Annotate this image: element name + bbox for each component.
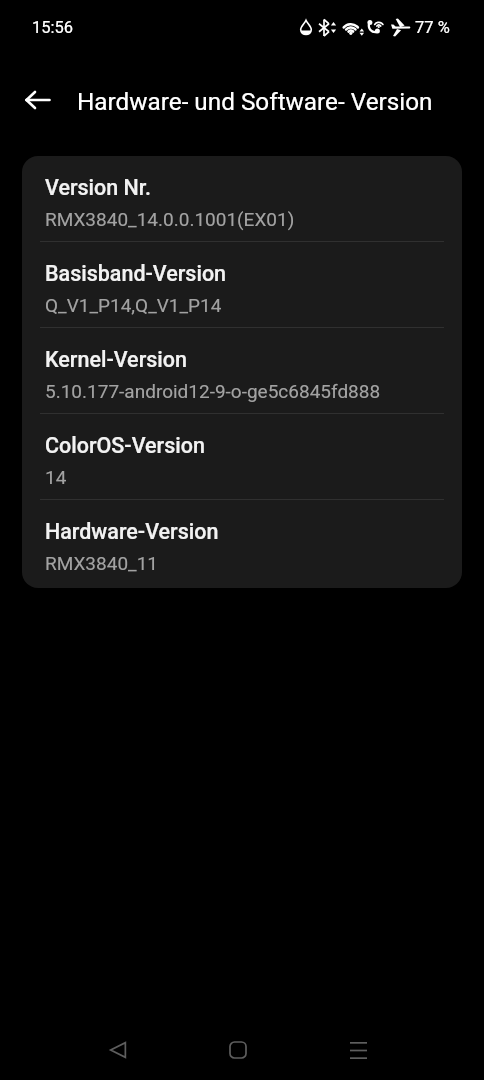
button[interactable]: Back <box>10 72 66 128</box>
button[interactable]: Recent apps <box>318 1025 398 1075</box>
staticText: 14 <box>45 466 67 488</box>
button[interactable]: Version Nr. <box>22 156 462 242</box>
button[interactable]: ColorOS-Version <box>22 414 462 500</box>
staticText: RMX3840_14.0.0.1001(EX01) <box>45 208 295 230</box>
staticText: Version Nr. <box>45 175 151 200</box>
staticText: Q_V1_P14,Q_V1_P14 <box>45 294 222 316</box>
button[interactable]: Kernel-Version <box>22 328 462 414</box>
button[interactable]: Home <box>198 1025 278 1075</box>
staticText: ColorOS-Version <box>45 433 205 458</box>
staticText: 77 % <box>415 18 450 37</box>
staticText: Kernel-Version <box>45 347 187 372</box>
staticText: Hardware-Version <box>45 519 219 544</box>
staticText: Basisband-Version <box>45 261 227 286</box>
button[interactable]: Basisband-Version <box>22 242 462 328</box>
staticText: 15:56 <box>32 18 74 37</box>
staticText: Hardware- und Software- Version <box>77 87 433 115</box>
staticText: RMX3840_11 <box>45 552 159 574</box>
staticText: 5.10.177-android12-9-o-ge5c6845fd888 <box>45 380 381 402</box>
button[interactable]: Back <box>78 1025 158 1075</box>
button[interactable]: Hardware-Version <box>22 500 462 585</box>
